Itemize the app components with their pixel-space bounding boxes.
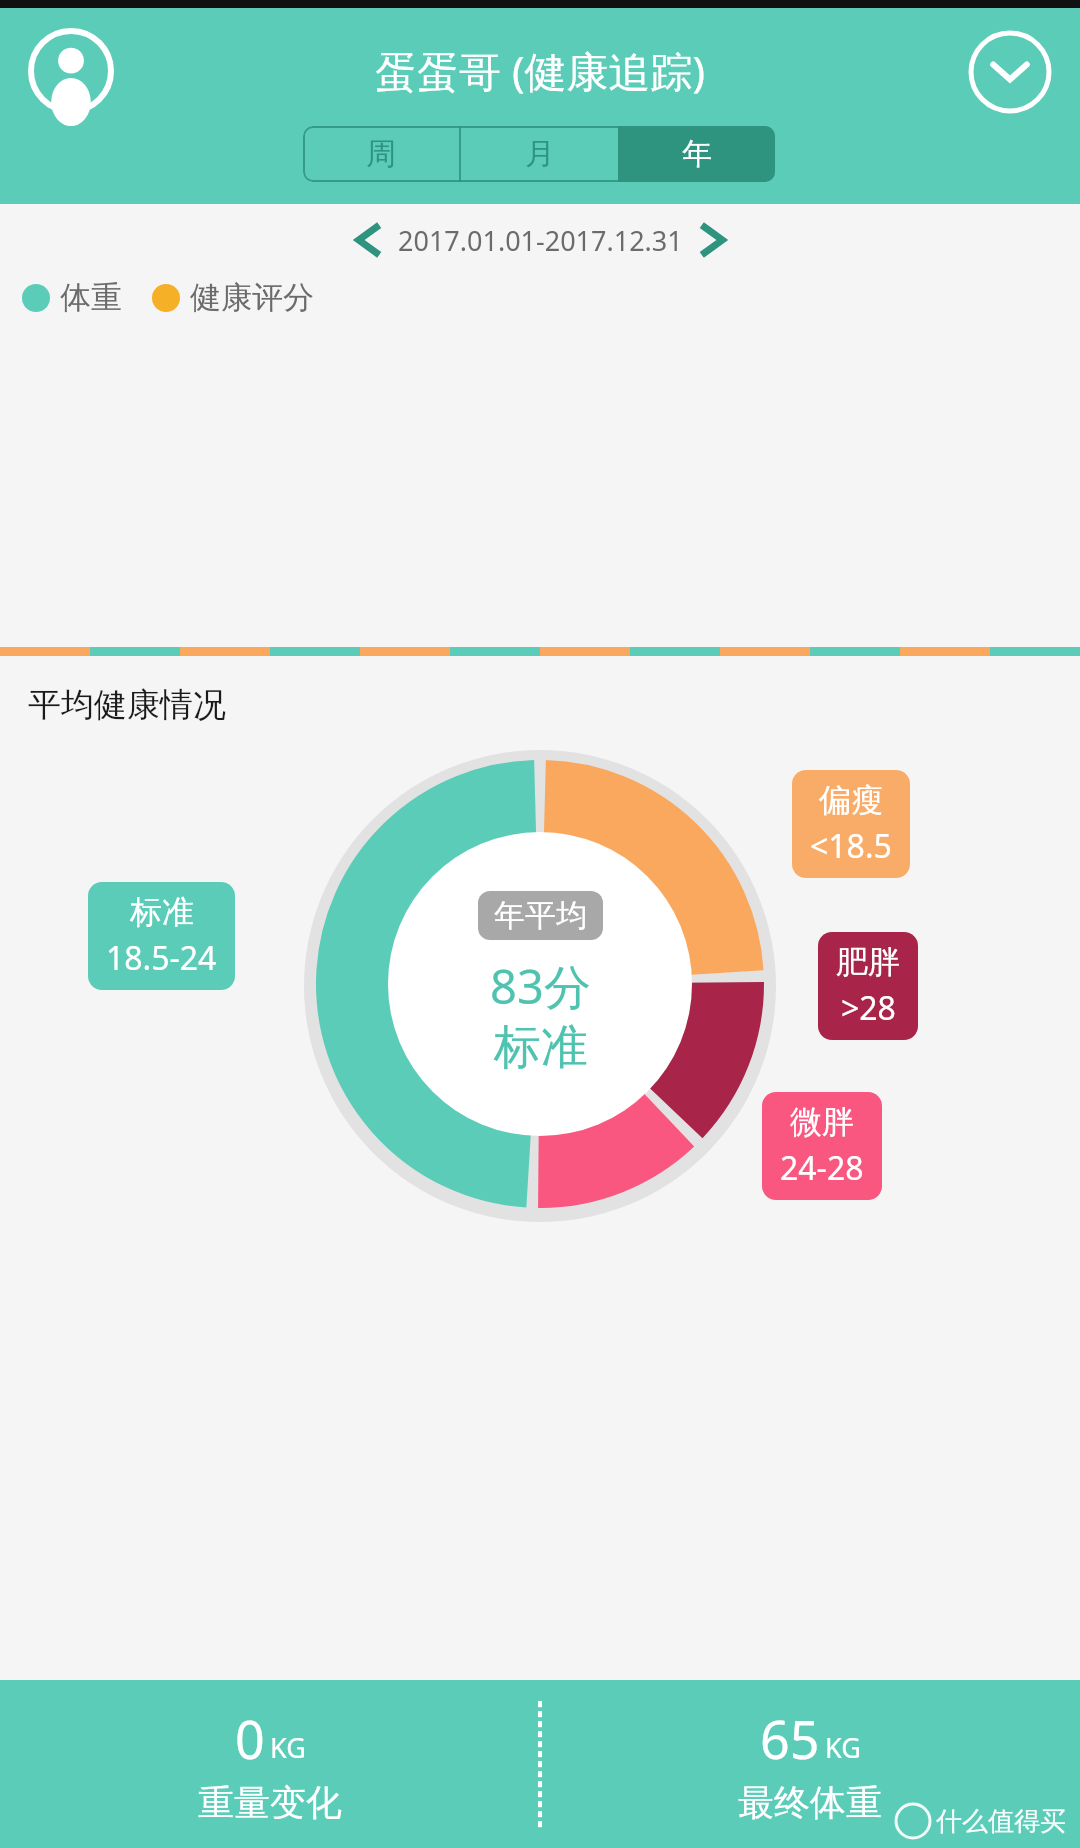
- button[interactable]: 标准: [88, 882, 235, 990]
- staticText: 体重: [60, 278, 122, 317]
- staticText: 微胖: [790, 1102, 854, 1142]
- button[interactable]: 周: [303, 126, 459, 182]
- staticText: KG: [825, 1729, 861, 1766]
- button[interactable]: Previous period: [344, 218, 388, 262]
- staticText: 0: [235, 1703, 265, 1774]
- staticText: 83分: [490, 954, 591, 1018]
- staticText: 18.5-24: [106, 936, 217, 980]
- staticText: >28: [841, 986, 896, 1030]
- staticText: 标准: [130, 892, 194, 932]
- button[interactable]: 肥胖: [818, 932, 918, 1040]
- staticText: 65: [760, 1703, 820, 1774]
- staticText: 标准: [494, 1018, 588, 1077]
- staticText: 年平均: [494, 896, 587, 935]
- staticText: 健康评分: [190, 278, 314, 317]
- staticText: 月: [525, 135, 555, 173]
- button[interactable]: 0: [0, 1680, 540, 1848]
- button[interactable]: 体重: [22, 278, 122, 317]
- staticText: 平均健康情况: [28, 684, 226, 726]
- button[interactable]: 健康评分: [152, 278, 314, 317]
- staticText: 24-28: [780, 1146, 864, 1190]
- button[interactable]: 年: [618, 126, 775, 182]
- button[interactable]: Next period: [693, 218, 737, 262]
- button[interactable]: Profile: [28, 28, 114, 114]
- staticText: 偏瘦: [819, 780, 883, 820]
- staticText: 重量变化: [198, 1780, 342, 1825]
- button[interactable]: 65: [540, 1680, 1080, 1848]
- staticText: 最终体重: [738, 1780, 882, 1825]
- button[interactable]: 微胖: [762, 1092, 882, 1200]
- staticText: 年: [682, 135, 712, 173]
- staticText: 什么值得买: [936, 1805, 1066, 1838]
- button[interactable]: Expand: [968, 30, 1052, 114]
- button[interactable]: 月: [461, 126, 618, 182]
- button[interactable]: 偏瘦: [792, 770, 910, 878]
- staticText: 2017.01.01-2017.12.31: [398, 222, 683, 259]
- staticText: 肥胖: [836, 942, 900, 982]
- staticText: 周: [366, 135, 396, 173]
- staticText: <18.5: [810, 824, 892, 868]
- staticText: 蛋蛋哥 (健康追踪): [375, 42, 706, 99]
- staticText: KG: [270, 1729, 306, 1766]
